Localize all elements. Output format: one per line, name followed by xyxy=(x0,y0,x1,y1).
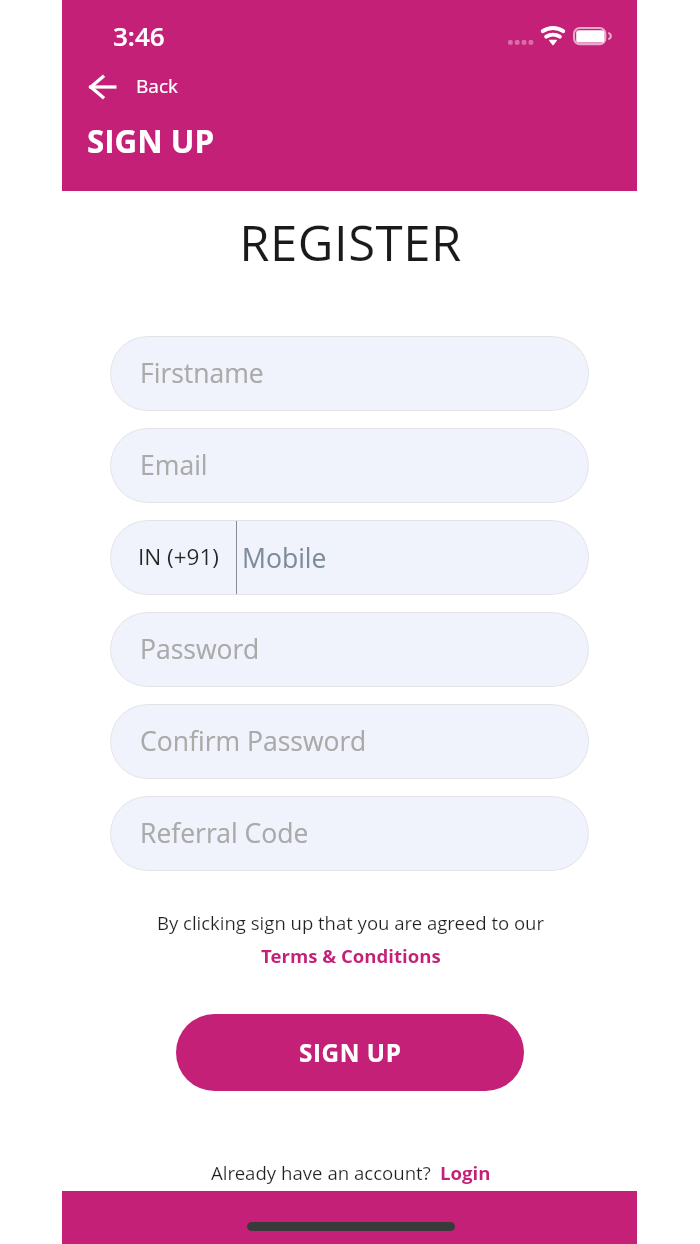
staticText: SIGN UP xyxy=(299,1036,402,1069)
staticText: Firstname xyxy=(140,355,264,391)
button[interactable]: Referral Code xyxy=(110,796,589,871)
staticText: SIGN UP xyxy=(87,120,215,163)
staticText: Confirm Password xyxy=(140,723,367,759)
button[interactable]: Email xyxy=(110,428,589,503)
staticText: 3:46 xyxy=(113,18,165,53)
button[interactable]: Terms & Conditions xyxy=(257,941,445,970)
staticText: Email xyxy=(140,447,208,483)
button[interactable]: Back xyxy=(82,70,188,104)
button[interactable]: Password xyxy=(110,612,589,687)
staticText: Already have an account? xyxy=(211,1160,431,1185)
staticText: Mobile xyxy=(242,540,327,576)
staticText: REGISTER xyxy=(63,209,638,276)
staticText: IN (+91) xyxy=(138,541,219,572)
staticText: Password xyxy=(140,631,260,667)
button[interactable]: Firstname xyxy=(110,336,589,411)
button[interactable]: Login xyxy=(438,1160,493,1185)
staticText: By clicking sign up that you are agreed … xyxy=(63,910,638,935)
staticText: Referral Code xyxy=(140,815,309,851)
staticText: Back xyxy=(136,73,178,99)
other: Back xyxy=(89,74,115,100)
button[interactable]: IN (+91) xyxy=(110,520,589,595)
button[interactable]: Confirm Password xyxy=(110,704,589,779)
button[interactable]: SIGN UP xyxy=(176,1014,524,1091)
